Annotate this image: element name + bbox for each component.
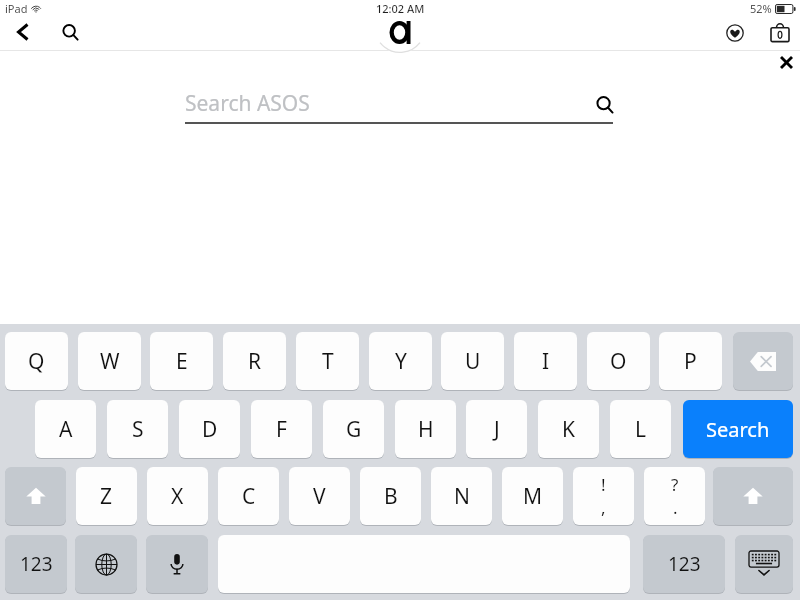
staticText: Y <box>395 347 407 376</box>
button[interactable]: Search ASOS <box>185 86 613 124</box>
button[interactable]: U <box>441 332 504 390</box>
button[interactable]: C <box>218 467 279 525</box>
button[interactable]: W <box>78 332 141 390</box>
button[interactable]: N <box>431 467 492 525</box>
staticText: ! <box>601 473 606 496</box>
staticText: W <box>100 347 120 376</box>
button[interactable]: E <box>150 332 213 390</box>
other: Shift <box>25 485 47 507</box>
staticText: I <box>542 347 550 376</box>
button[interactable]: V <box>289 467 350 525</box>
button[interactable]: L <box>610 400 671 458</box>
button[interactable]: Search <box>52 14 88 50</box>
staticText: Z <box>100 482 113 511</box>
button[interactable]: J <box>466 400 527 458</box>
button[interactable]: 123 <box>5 535 67 593</box>
button[interactable]: Q <box>5 332 68 390</box>
staticText: H <box>418 415 434 444</box>
button[interactable]: Backspace <box>733 332 793 390</box>
button[interactable]: ? <box>644 467 705 525</box>
staticText: Q <box>28 347 45 376</box>
staticText: V <box>313 482 326 511</box>
staticText: B <box>384 482 398 511</box>
button[interactable]: Dictate <box>146 535 208 593</box>
staticText: M <box>523 482 543 511</box>
staticText: 123 <box>20 551 53 577</box>
staticText: D <box>202 415 218 444</box>
button[interactable]: A <box>35 400 96 458</box>
other: Backspace <box>750 352 776 371</box>
staticText: F <box>276 415 287 444</box>
staticText: , <box>601 496 606 519</box>
button[interactable]: Close <box>768 44 800 80</box>
other: Dictate <box>170 553 184 575</box>
button[interactable]: Shift <box>5 467 66 525</box>
button[interactable]: B <box>360 467 421 525</box>
staticText: A <box>59 415 73 444</box>
button[interactable]: Next keyboard <box>75 535 137 593</box>
staticText: L <box>635 415 647 444</box>
staticText: P <box>684 347 697 376</box>
button[interactable]: O <box>587 332 650 390</box>
button[interactable]: R <box>223 332 286 390</box>
staticText: iPad <box>5 1 28 16</box>
button[interactable]: M <box>502 467 563 525</box>
button[interactable]: Z <box>76 467 137 525</box>
staticText: T <box>322 347 334 376</box>
staticText: X <box>171 482 184 511</box>
button[interactable]: I <box>514 332 577 390</box>
button[interactable]: D <box>179 400 240 458</box>
button[interactable]: H <box>395 400 456 458</box>
staticText: 123 <box>668 551 701 577</box>
button[interactable]: K <box>538 400 599 458</box>
button[interactable]: X <box>147 467 208 525</box>
button[interactable]: ! <box>573 467 634 525</box>
staticText: Search ASOS <box>185 89 310 118</box>
button[interactable]: S <box>107 400 168 458</box>
button[interactable]: 123 <box>643 535 725 593</box>
staticText: 52% <box>750 1 772 16</box>
other: Hide keyboard <box>749 551 779 577</box>
staticText: K <box>562 415 575 444</box>
staticText: ? <box>671 473 679 496</box>
button[interactable]: Shift <box>713 467 793 525</box>
staticText: Search <box>706 416 770 443</box>
staticText: O <box>610 347 627 376</box>
button[interactable]: Search <box>683 400 793 458</box>
staticText: R <box>248 347 262 376</box>
other: Shift <box>742 485 764 507</box>
staticText: N <box>454 482 470 511</box>
button[interactable]: Favourites <box>717 15 753 51</box>
staticText: C <box>242 482 256 511</box>
staticText: 12:02 AM <box>376 1 425 16</box>
staticText: . <box>673 496 678 519</box>
staticText: S <box>132 415 144 444</box>
button[interactable]: Back <box>4 14 40 50</box>
staticText: J <box>494 415 500 444</box>
button[interactable]: P <box>659 332 722 390</box>
staticText: U <box>465 347 481 376</box>
button[interactable]: F <box>251 400 312 458</box>
button[interactable]: Y <box>369 332 432 390</box>
button[interactable]: G <box>323 400 384 458</box>
staticText: G <box>346 415 362 444</box>
button[interactable]: Hide keyboard <box>735 535 793 593</box>
button[interactable]: ASOS home <box>370 0 430 58</box>
staticText: E <box>176 347 188 376</box>
button[interactable]: T <box>296 332 359 390</box>
other: Next keyboard <box>95 553 118 576</box>
button[interactable]: Bag, 0 items <box>762 14 798 50</box>
